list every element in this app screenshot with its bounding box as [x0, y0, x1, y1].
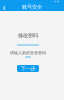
staticText: 修改密码	[18, 32, 38, 39]
staticText: 账号安全	[22, 4, 42, 10]
staticText: 请输入新的登录密码	[10, 50, 46, 55]
button[interactable]: 下一步	[17, 65, 39, 72]
button[interactable]: Back	[0, 3, 8, 11]
staticText: ‹	[2, 1, 5, 13]
staticText: 下一步	[20, 65, 35, 72]
